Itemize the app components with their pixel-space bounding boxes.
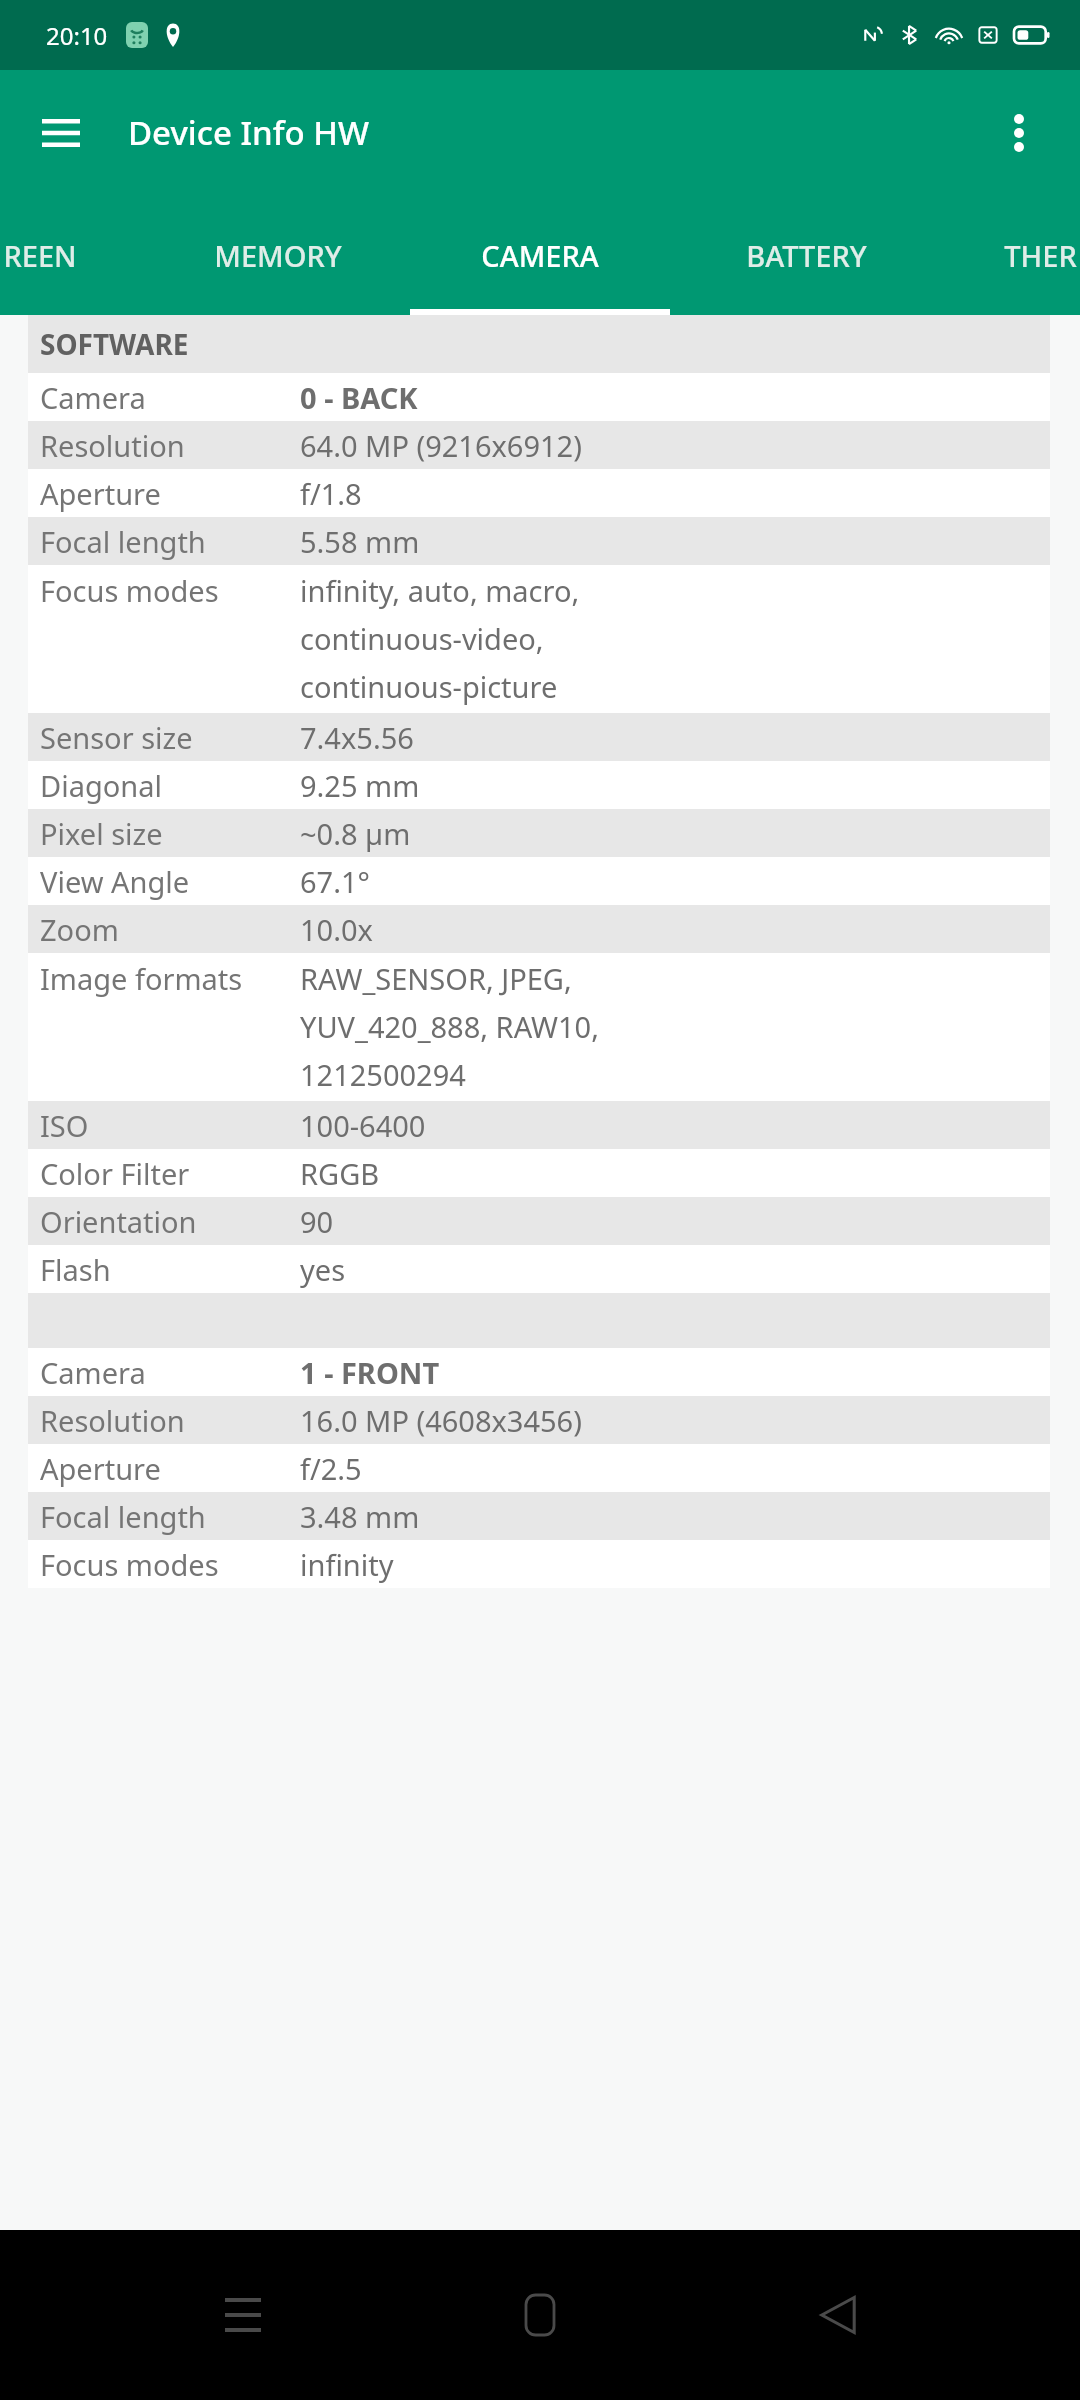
staticText: 16.0 MP (4608x3456) [300,1401,582,1440]
button[interactable]: BATTERY [681,195,931,315]
staticText: 3.48 mm [300,1497,420,1536]
staticText: BATTERY [746,236,867,275]
staticText: 64.0 MP (9216x6912) [300,426,582,465]
staticText: infinity [300,1545,394,1584]
staticText: Sensor size [40,718,193,757]
staticText: 20:10 [46,19,108,52]
staticText: Orientation [40,1202,197,1241]
button[interactable]: THER [965,195,1080,315]
button[interactable]: Camera [28,1348,1050,1396]
button[interactable]: Focal length [28,1492,1050,1540]
staticText: yes [300,1250,346,1289]
button[interactable]: Flash [28,1245,1050,1293]
button[interactable]: Focus modes [28,565,1050,713]
staticText: SOFTWARE [40,325,189,363]
button[interactable]: Orientation [28,1197,1050,1245]
staticText: Focus modes [40,1545,219,1584]
staticText: Focus modes [40,571,219,610]
staticText: 0 - BACK [300,378,418,417]
staticText: Diagonal [40,766,162,805]
staticText: 90 [300,1202,334,1241]
staticText: REEN [3,236,77,275]
staticText: Resolution [40,1401,185,1440]
button[interactable]: Sensor size [28,713,1050,761]
button[interactable]: Focal length [28,517,1050,565]
staticText: f/2.5 [300,1449,362,1488]
staticText: RGGB [300,1154,380,1193]
staticText: THER [1004,236,1077,275]
staticText: Camera [40,1353,146,1392]
button[interactable]: Recent apps [188,2260,298,2370]
staticText: Aperture [40,474,161,513]
button[interactable]: Camera [28,373,1050,421]
staticText: 10.0x [300,910,373,949]
staticText: Camera [40,378,146,417]
staticText: RAW_SENSOR, JPEG, YUV_420_888, RAW10, 12… [300,959,599,1094]
staticText: ISO [40,1106,89,1145]
staticText: Resolution [40,426,185,465]
button[interactable]: View Angle [28,857,1050,905]
button[interactable]: Diagonal [28,761,1050,809]
button[interactable]: More options [980,94,1058,172]
staticText: Flash [40,1250,111,1289]
staticText: infinity, auto, macro, continuous-video,… [300,571,580,706]
staticText: Image formats [40,959,243,998]
staticText: 5.58 mm [300,522,420,561]
button[interactable]: Pixel size [28,809,1050,857]
staticText: 9.25 mm [300,766,420,805]
button[interactable]: Color Filter [28,1149,1050,1197]
button[interactable]: Aperture [28,469,1050,517]
button[interactable]: CAMERA [410,195,670,315]
button[interactable]: Zoom [28,905,1050,953]
staticText: View Angle [40,862,190,901]
staticText: Aperture [40,1449,161,1488]
button[interactable]: ISO [28,1101,1050,1149]
button[interactable]: Resolution [28,421,1050,469]
button[interactable]: Resolution [28,1396,1050,1444]
staticText: Zoom [40,910,119,949]
staticText: Color Filter [40,1154,190,1193]
staticText: CAMERA [481,236,599,275]
staticText: Focal length [40,1497,206,1536]
button[interactable]: REEN [0,195,120,315]
staticText: f/1.8 [300,474,362,513]
button[interactable]: Back [783,2260,893,2370]
staticText: Device Info HW [128,110,370,155]
staticText: 100-6400 [300,1106,426,1145]
button[interactable]: MEMORY [163,195,393,315]
staticText: MEMORY [214,236,342,275]
button[interactable]: Open navigation menu [22,94,100,172]
staticText: 7.4x5.56 [300,718,414,757]
button[interactable]: SOFTWARE [28,315,1050,373]
button[interactable]: Aperture [28,1444,1050,1492]
button[interactable]: Home [485,2260,595,2370]
button[interactable]: Focus modes [28,1540,1050,1588]
staticText: Focal length [40,522,206,561]
staticText: Pixel size [40,814,163,853]
staticText: 1 - FRONT [300,1353,440,1392]
staticText: ~0.8 µm [300,814,411,853]
staticText: 67.1° [300,862,370,901]
button[interactable]: Image formats [28,953,1050,1101]
